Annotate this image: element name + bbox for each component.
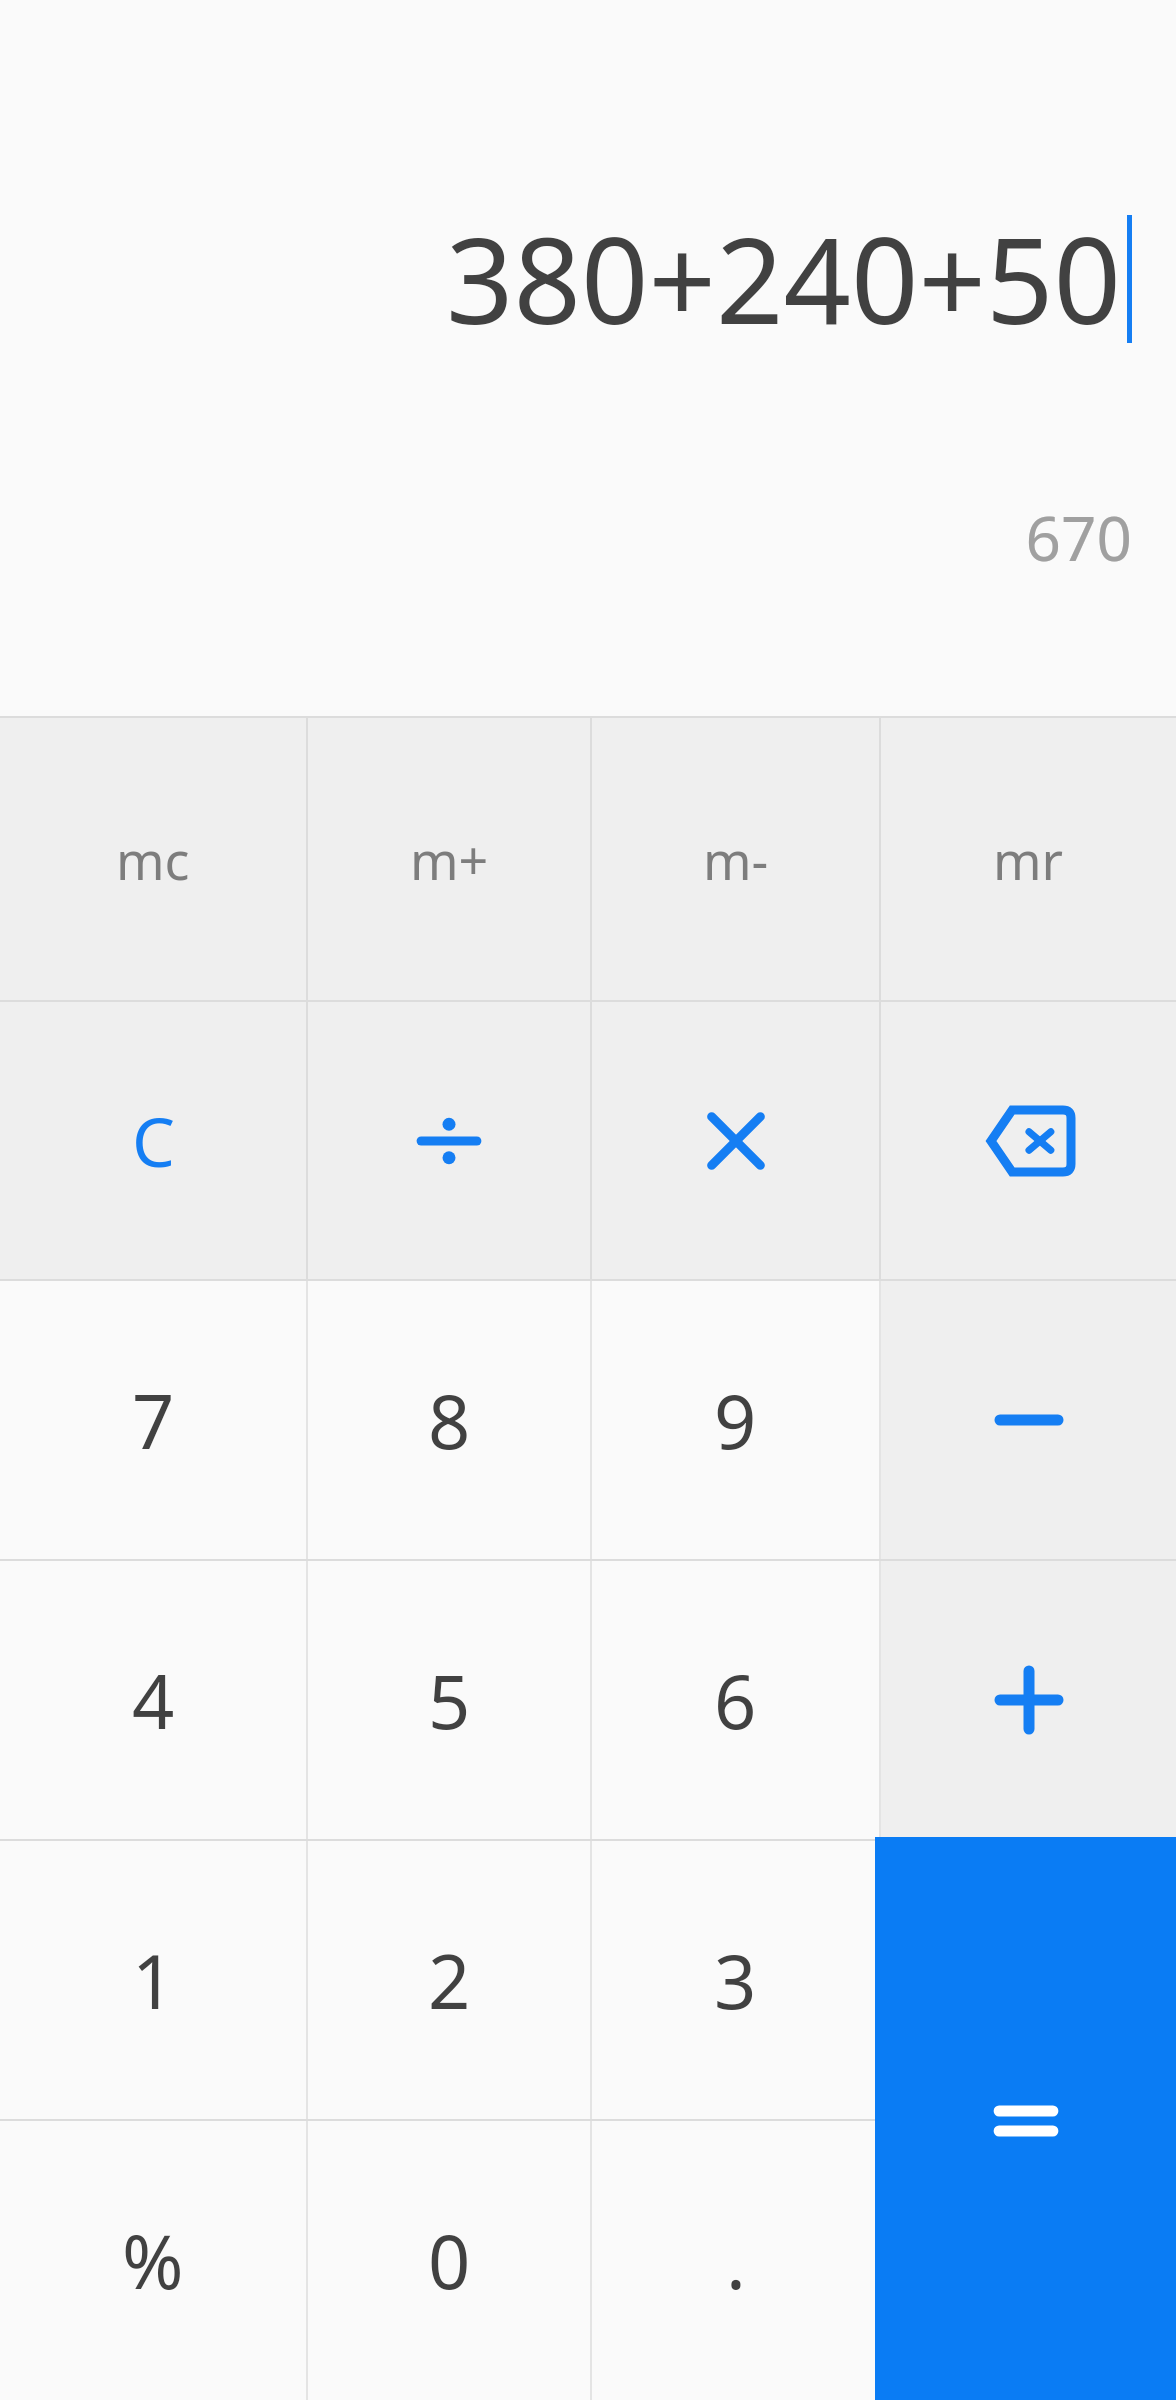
staticText: %	[122, 2210, 184, 2311]
staticText: .	[726, 2210, 746, 2311]
button[interactable]: Minus	[881, 1281, 1176, 1559]
button[interactable]: 5	[308, 1561, 590, 1839]
button[interactable]: 1	[0, 1841, 306, 2119]
button[interactable]: 8	[308, 1281, 590, 1559]
button[interactable]: Multiply	[592, 1002, 879, 1279]
staticText: mc	[116, 824, 190, 895]
staticText: 9	[714, 1370, 757, 1471]
button[interactable]: Plus	[881, 1561, 1176, 1839]
button[interactable]: Equals	[875, 1837, 1176, 2400]
staticText: 4	[132, 1650, 175, 1751]
button[interactable]: 3	[592, 1841, 879, 2119]
staticText: 1	[132, 1930, 175, 2031]
button[interactable]: 6	[592, 1561, 879, 1839]
button[interactable]: m+	[308, 718, 590, 1000]
button[interactable]: 7	[0, 1281, 306, 1559]
button[interactable]: %	[0, 2121, 306, 2400]
button[interactable]: 4	[0, 1561, 306, 1839]
staticText: 670	[1025, 495, 1132, 579]
button[interactable]: 9	[592, 1281, 879, 1559]
button[interactable]: 2	[308, 1841, 590, 2119]
staticText: C	[132, 1094, 175, 1187]
button[interactable]: mc	[0, 718, 306, 1000]
staticText: 3	[714, 1930, 757, 2031]
staticText: 5	[428, 1650, 471, 1751]
staticText: mr	[993, 824, 1064, 895]
staticText: 6	[714, 1650, 757, 1751]
button[interactable]: Backspace	[881, 1002, 1176, 1279]
button[interactable]: mr	[881, 718, 1176, 1000]
button[interactable]: 0	[308, 2121, 590, 2400]
staticText: 7	[132, 1370, 175, 1471]
button[interactable]: m-	[592, 718, 879, 1000]
staticText: 0	[428, 2210, 471, 2311]
button[interactable]: .	[592, 2121, 879, 2400]
button[interactable]: Clear	[0, 1002, 306, 1279]
staticText: 380+240+50	[446, 198, 1121, 359]
staticText: 8	[428, 1370, 471, 1471]
staticText: m+	[410, 824, 489, 895]
staticText: 2	[428, 1930, 471, 2031]
staticText: m-	[703, 824, 769, 895]
button[interactable]: Divide	[308, 1002, 590, 1279]
